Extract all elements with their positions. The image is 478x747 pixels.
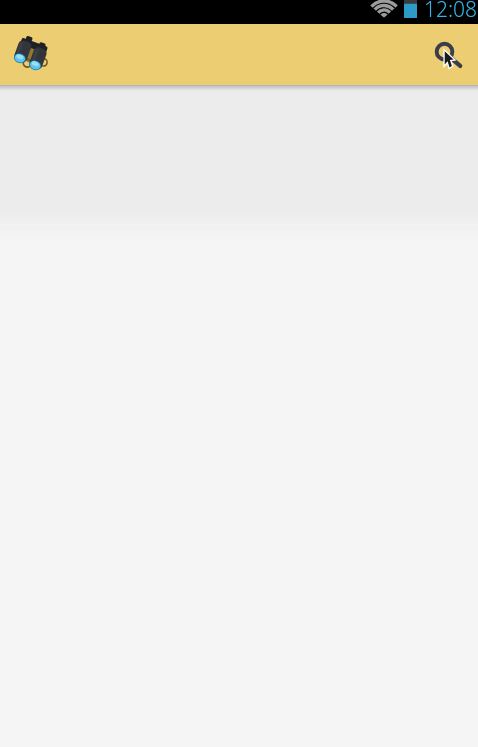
button[interactable]: Search (429, 35, 469, 75)
button[interactable]: App icon (8, 32, 53, 77)
staticText: 12:08 (424, 0, 478, 19)
